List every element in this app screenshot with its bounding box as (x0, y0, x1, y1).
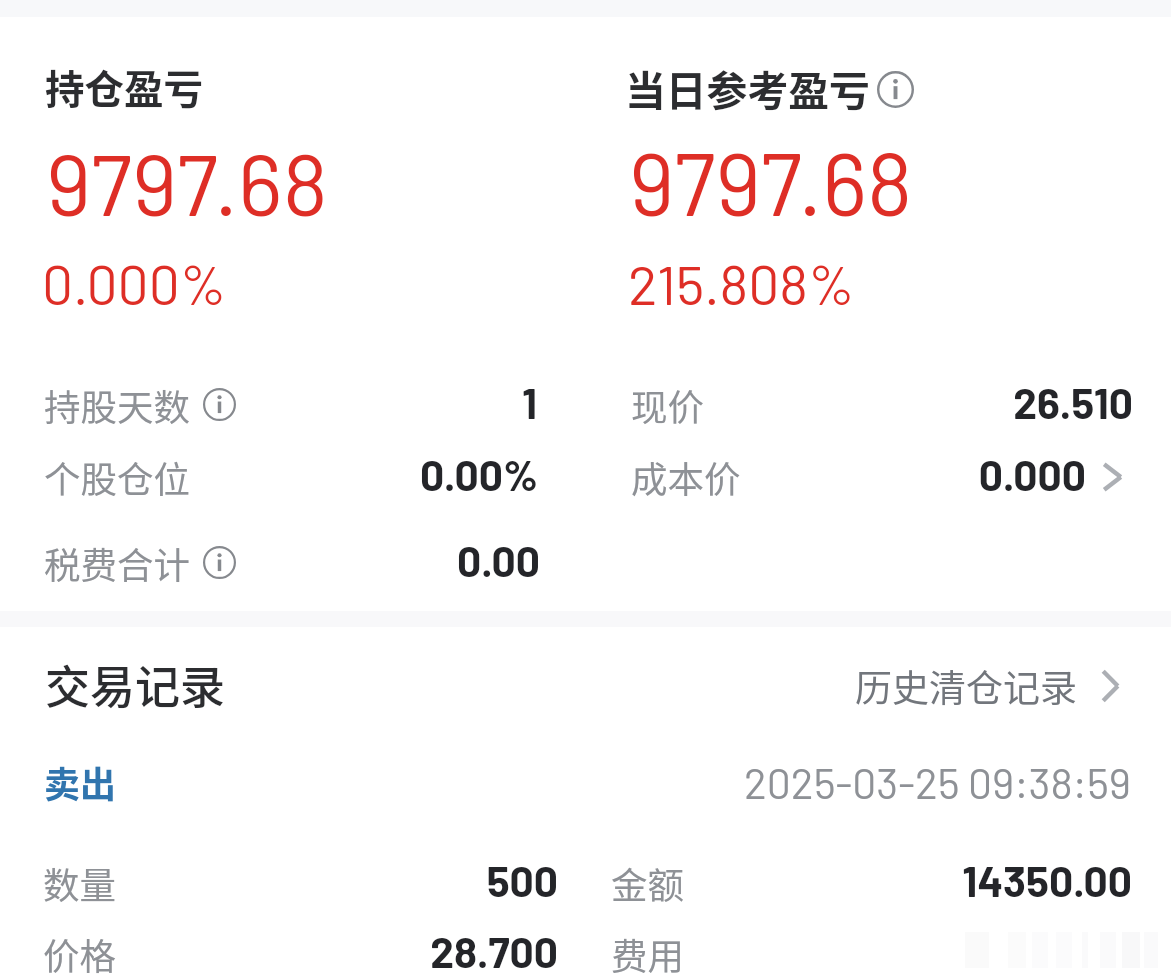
staticText: 9797.68 (629, 129, 913, 233)
staticText: 500 (158, 854, 558, 905)
staticText: 当日参考盈亏 (625, 59, 870, 118)
staticText: 28.700 (158, 925, 558, 974)
button[interactable]: 当日参考盈亏说明 (877, 71, 914, 108)
staticText: 2025-03-25 09:38:59 (731, 756, 1131, 807)
staticText: 卖出 (44, 756, 117, 808)
button[interactable]: 卖出 (20, 742, 1150, 826)
staticText: 9797.68 (46, 129, 328, 233)
staticText: 26.510 (733, 376, 1133, 427)
staticText: 0.000 (686, 448, 1086, 499)
staticText: 费用 (611, 928, 684, 974)
staticText: 0.00 (140, 534, 540, 585)
staticText: 价格 (43, 928, 116, 974)
staticText: 持仓盈亏 (45, 58, 203, 115)
button[interactable]: 税费合计说明 (203, 546, 236, 579)
staticText: 现价 (631, 379, 704, 432)
staticText: 1 (137, 376, 537, 427)
staticText: 金额 (611, 857, 684, 910)
staticText: 税费合计 (44, 537, 190, 590)
staticText: 持股天数 (44, 379, 190, 432)
staticText: 历史清仓记录 (855, 659, 1077, 713)
button[interactable]: 成本价 (1088, 450, 1109, 480)
staticText: 215.808% (628, 250, 855, 316)
staticText: 数量 (43, 857, 116, 910)
staticText: 0.000% (42, 250, 227, 316)
staticText: 成本价 (631, 451, 741, 504)
staticText: 0.00% (138, 448, 538, 499)
staticText: 个股仓位 (44, 451, 190, 504)
staticText: 交易记录 (45, 652, 226, 717)
button[interactable]: 成本价 (600, 448, 1150, 508)
staticText: 14350.00 (732, 854, 1132, 905)
button[interactable]: 历史清仓记录 (845, 659, 1130, 713)
button[interactable]: 持股天数说明 (203, 388, 236, 421)
